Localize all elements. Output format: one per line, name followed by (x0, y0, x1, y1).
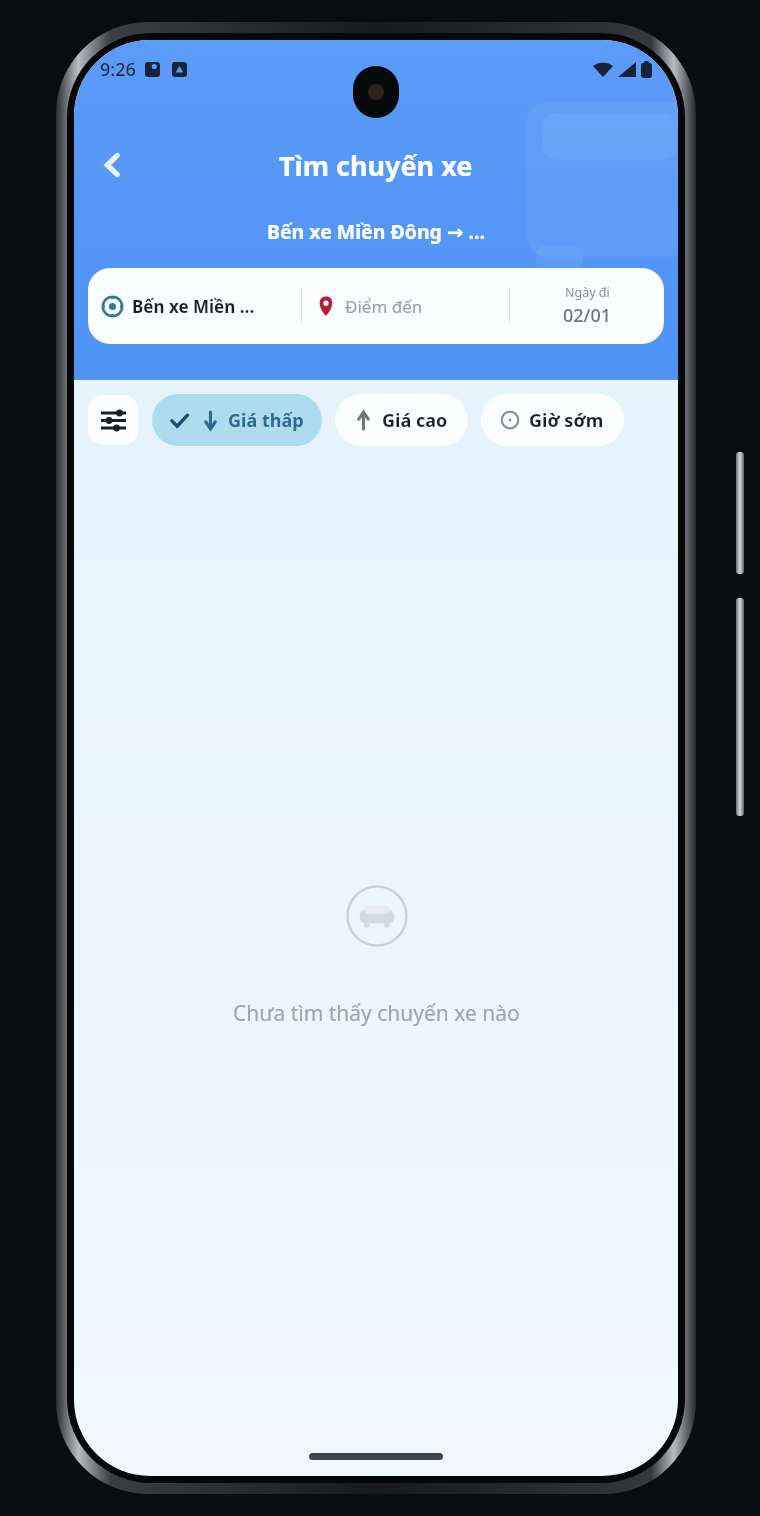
button[interactable]: Giá thấp (152, 394, 322, 446)
button[interactable]: Bến xe Miền … (88, 268, 664, 344)
staticText: 9:26 (100, 57, 136, 82)
staticText: 02/01 (563, 303, 612, 328)
staticText: Giờ sớm (529, 408, 604, 433)
staticText: Ngày đi (565, 284, 610, 301)
staticText: Giá thấp (228, 408, 304, 433)
staticText: Bến xe Miền Đông → … (74, 218, 678, 245)
button[interactable]: Filters (88, 395, 138, 445)
button[interactable]: Giờ sớm (481, 394, 624, 446)
button[interactable]: Giá cao (335, 394, 468, 446)
staticText: Giá cao (382, 408, 448, 433)
button[interactable]: Back (86, 138, 140, 192)
staticText: Chưa tìm thấy chuyến xe nào (233, 999, 520, 1028)
staticText: Tìm chuyến xe (279, 147, 473, 184)
staticText: Bến xe Miền … (132, 295, 255, 318)
staticText: Điểm đến (345, 295, 423, 318)
